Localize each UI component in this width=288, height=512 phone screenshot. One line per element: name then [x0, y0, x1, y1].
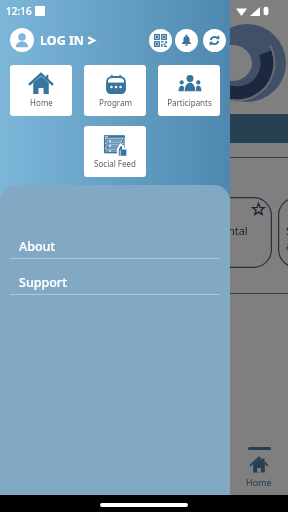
button[interactable]: Participants: [158, 65, 220, 116]
staticText: Home: [246, 476, 272, 488]
button[interactable]: Home: [10, 65, 72, 116]
staticText: Participants: [167, 97, 212, 108]
button[interactable]: Refresh: [203, 29, 226, 52]
staticText: LOG IN: [40, 32, 84, 49]
staticText: Program: [99, 97, 132, 108]
button[interactable]: About: [0, 234, 230, 270]
staticText: 12:16: [6, 4, 32, 18]
button[interactable]: Social Feed: [84, 126, 146, 177]
button[interactable]: Notifications: [175, 29, 198, 52]
staticText: Supplemental: [286, 223, 288, 253]
staticText: Supplemental: [176, 223, 248, 238]
button[interactable]: Scan QR code: [149, 29, 172, 52]
button[interactable]: Support: [0, 270, 230, 306]
button[interactable]: Home: [230, 447, 288, 488]
staticText: About: [19, 238, 56, 255]
button[interactable]: LOG IN: [10, 28, 96, 52]
staticText: Support: [19, 274, 67, 291]
staticText: Home: [30, 97, 53, 108]
staticText: Social Feed: [94, 158, 136, 169]
button[interactable]: Program: [84, 65, 146, 116]
